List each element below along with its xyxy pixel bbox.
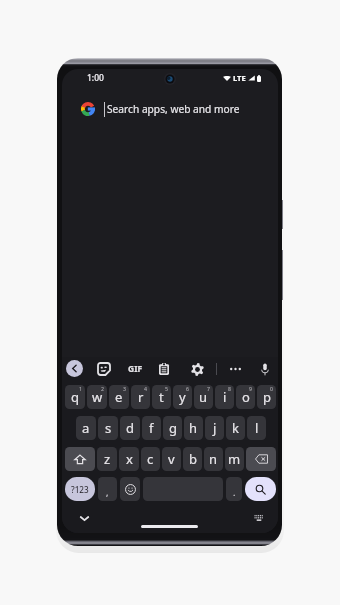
staticText: 1 [79,385,82,392]
button[interactable]: y [173,385,192,409]
button[interactable]: q [65,385,85,409]
button[interactable]: n [204,447,223,471]
staticText: Search apps, web and more [107,102,240,116]
staticText: ?123 [71,484,89,495]
staticText: 9 [249,385,252,392]
staticText: l [255,419,259,437]
staticText: p [263,388,271,406]
button[interactable]: Search [245,477,276,501]
button[interactable]: p [257,385,276,409]
button[interactable]: o [236,385,255,409]
staticText: o [242,388,250,406]
staticText: m [228,450,241,468]
button[interactable]: ?123 [65,477,95,501]
staticText: b [189,450,197,468]
staticText: h [189,419,198,437]
button[interactable]: , [98,477,117,501]
button[interactable]: k [226,416,245,440]
staticText: 8 [228,385,231,392]
staticText: j [213,419,217,437]
staticText: 7 [207,385,210,392]
button[interactable]: l [247,416,266,440]
staticText: 3 [123,385,126,392]
staticText: 1:00 [87,72,104,84]
staticText: i [223,388,227,406]
button[interactable]: Clipboard [156,361,172,377]
button[interactable]: a [76,416,96,440]
staticText: t [159,388,164,406]
button[interactable]: h [184,416,203,440]
staticText: s [105,419,112,437]
button[interactable]: Back [66,360,83,377]
button[interactable]: i [215,385,234,409]
staticText: v [168,450,175,468]
button[interactable]: f [142,416,161,440]
staticText: . [233,486,236,498]
button[interactable]: Shift [65,447,95,471]
staticText: w [92,388,103,406]
staticText: f [149,419,154,437]
staticText: , [106,486,109,498]
staticText: n [209,450,218,468]
button[interactable]: v [162,447,181,471]
staticText: x [126,450,133,468]
staticText: 6 [186,385,189,392]
staticText: e [115,388,123,406]
staticText: 5 [165,385,168,392]
staticText: 4 [144,385,147,392]
staticText: LTE [233,73,246,83]
button[interactable] [120,477,140,501]
staticText: GIF [128,363,143,375]
button[interactable]: Voice input [257,361,273,377]
button[interactable]: Backspace [246,447,276,471]
button[interactable]: z [97,447,117,471]
staticText: 0 [270,385,273,392]
button[interactable]: Search apps, web and more [62,96,278,122]
button[interactable]: s [98,416,118,440]
button[interactable]: Hide keyboard [76,510,92,526]
button[interactable]: . [226,477,242,501]
button[interactable]: g [163,416,182,440]
button[interactable]: r [131,385,150,409]
staticText: y [179,388,186,406]
button[interactable]: GIF [125,361,145,377]
staticText: 2 [101,385,104,392]
button[interactable]: x [119,447,139,471]
button[interactable]: u [194,385,213,409]
button[interactable]: w [87,385,107,409]
button[interactable]: e [109,385,129,409]
staticText: g [169,419,177,437]
button[interactable]: j [205,416,224,440]
button[interactable]: d [120,416,140,440]
staticText: u [199,388,208,406]
staticText: q [71,388,79,406]
staticText: d [126,419,134,437]
button[interactable]: More options [227,361,243,377]
button[interactable]: Change keyboard [251,510,267,526]
button[interactable]: c [141,447,160,471]
button[interactable]: b [183,447,202,471]
button[interactable]: t [152,385,171,409]
staticText: z [104,450,111,468]
staticText: k [232,419,239,437]
staticText: c [147,450,154,468]
staticText: r [138,388,144,406]
button[interactable]: m [225,447,244,471]
button[interactable]: Stickers [96,361,112,377]
button[interactable]: Settings [189,361,205,377]
staticText: a [82,419,90,437]
